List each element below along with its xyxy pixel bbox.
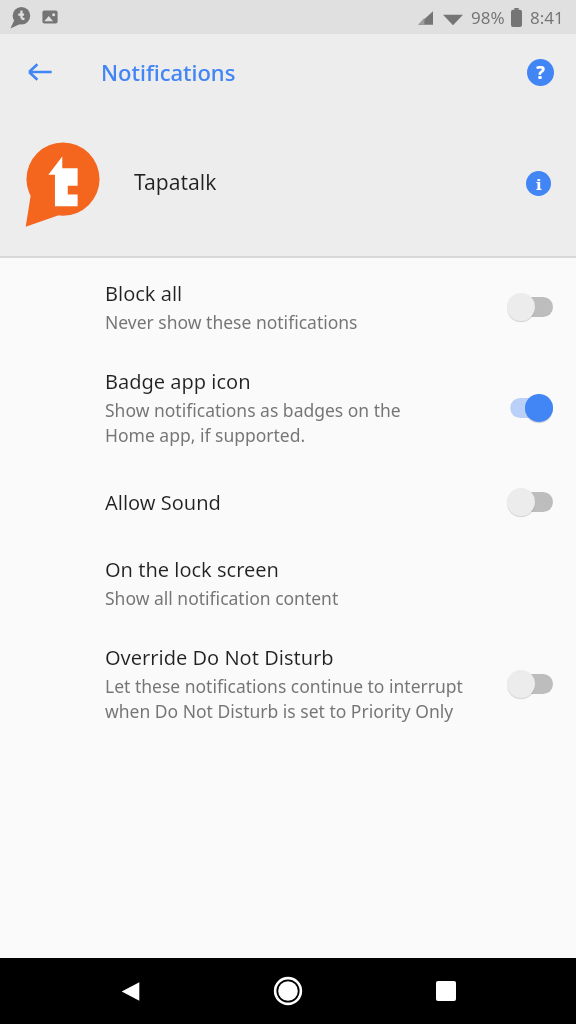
button[interactable]: Help xyxy=(516,48,564,96)
button[interactable]: Override Do Not Disturb off xyxy=(504,664,556,704)
staticText: Allow Sound xyxy=(105,489,221,516)
staticText: Badge app icon xyxy=(105,368,251,395)
button[interactable]: Badge app icon on xyxy=(504,388,556,428)
button[interactable]: Badge app icon xyxy=(0,368,576,448)
button[interactable]: Tapatalk xyxy=(0,109,576,256)
button[interactable]: Block all off xyxy=(504,287,556,327)
staticText: ? xyxy=(536,60,545,85)
staticText: Let these notifications continue to inte… xyxy=(105,674,467,724)
staticText: 8:41 xyxy=(530,6,564,29)
button[interactable]: Allow Sound off xyxy=(504,482,556,522)
staticText: Tapatalk xyxy=(134,168,217,197)
button[interactable]: Override Do Not Disturb xyxy=(0,644,576,724)
button[interactable]: Recent apps xyxy=(418,963,474,1019)
staticText: Show all notification content xyxy=(105,586,339,610)
button[interactable]: Home xyxy=(260,963,316,1019)
button[interactable]: App info xyxy=(516,161,560,205)
staticText: i xyxy=(536,174,542,194)
staticText: Block all xyxy=(105,280,183,307)
button[interactable]: On the lock screen xyxy=(0,556,576,610)
staticText: 98% xyxy=(471,6,505,29)
staticText: Notifications xyxy=(101,57,236,87)
staticText: Never show these notifications xyxy=(105,310,358,334)
button[interactable]: Back xyxy=(102,963,158,1019)
button[interactable]: Allow Sound xyxy=(0,482,576,522)
button[interactable]: Block all xyxy=(0,280,576,334)
staticText: On the lock screen xyxy=(105,556,279,583)
staticText: Override Do Not Disturb xyxy=(105,644,334,671)
button[interactable]: Back xyxy=(16,48,64,96)
staticText: Show notifications as badges on the Home… xyxy=(105,398,455,448)
